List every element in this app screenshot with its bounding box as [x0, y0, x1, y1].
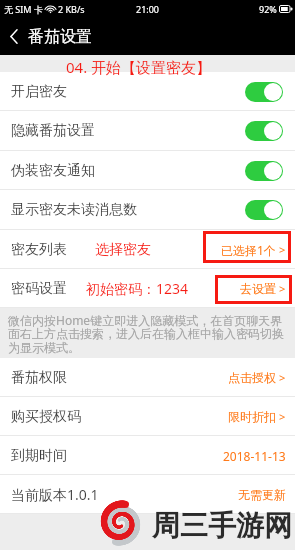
button[interactable]: Toggle switch: [245, 82, 283, 102]
staticText: 微信内按Home键立即进入隐藏模式，在首页聊天界面右上方点击搜索，进入后在输入框…: [8, 312, 288, 356]
staticText: 番茄设置: [28, 27, 92, 47]
button[interactable]: Toggle switch: [245, 121, 283, 141]
staticText: >: [279, 242, 286, 257]
staticText: 伪装密友通知: [11, 162, 95, 180]
staticText: 隐藏番茄设置: [11, 122, 95, 140]
staticText: 番茄权限: [11, 369, 67, 387]
staticText: 密码设置: [11, 280, 67, 298]
button[interactable]: 购买授权码: [0, 397, 295, 436]
staticText: >: [279, 281, 286, 296]
button[interactable]: 显示密友未读消息数: [0, 190, 295, 230]
staticText: 04. 开始【设置密友】: [66, 57, 212, 77]
button[interactable]: 伪装密友通知: [0, 151, 295, 190]
staticText: 当前版本1.0.1: [11, 485, 99, 504]
staticText: 限时折扣: [228, 409, 276, 424]
staticText: 去设置: [240, 281, 276, 296]
button[interactable]: Toggle switch: [245, 200, 283, 220]
staticText: 开启密友: [11, 83, 67, 101]
button[interactable]: 密码设置: [0, 269, 295, 308]
staticText: 购买授权码: [11, 408, 81, 426]
staticText: 21:00: [136, 3, 160, 15]
staticText: 2018-11-13: [223, 448, 286, 464]
staticText: 点击授权: [228, 370, 276, 385]
staticText: 周三手游网: [152, 508, 292, 543]
button[interactable]: 番茄权限: [0, 358, 295, 397]
staticText: >: [279, 370, 286, 385]
button[interactable]: 开启密友: [0, 72, 295, 111]
button[interactable]: 到期时间: [0, 436, 295, 475]
staticText: 92%: [259, 3, 277, 15]
staticText: 已选择1个: [221, 242, 276, 258]
button[interactable]: Back: [0, 18, 28, 55]
button[interactable]: Toggle switch: [245, 161, 283, 181]
staticText: 无需更新: [238, 487, 286, 502]
staticText: 初始密码：1234: [86, 279, 189, 298]
button[interactable]: 当前版本1.0.1: [0, 475, 295, 514]
button[interactable]: 隐藏番茄设置: [0, 111, 295, 151]
staticText: 选择密友: [95, 241, 151, 259]
staticText: >: [279, 409, 286, 424]
staticText: 无 SIM 卡: [4, 3, 43, 15]
staticText: 到期时间: [11, 447, 67, 465]
staticText: 2 KB/s: [58, 3, 85, 15]
button[interactable]: 密友列表: [0, 230, 295, 269]
staticText: 密友列表: [11, 241, 67, 259]
staticText: 显示密友未读消息数: [11, 201, 137, 219]
